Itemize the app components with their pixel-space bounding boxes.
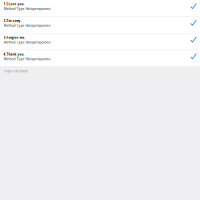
staticText: 2.I'm sorry.	[3, 19, 21, 23]
staticText: Method Type Holopempororio	[3, 23, 50, 27]
button[interactable]: 2.I'm sorry.	[0, 17, 200, 33]
staticText: 1.I Love you.	[3, 2, 24, 6]
staticText: 4 responses selected.	[4, 69, 29, 73]
staticText: 4.Thank you.	[3, 52, 24, 56]
staticText: Method Type Holopempororio	[3, 7, 50, 11]
staticText: 3.Forgive me.	[3, 36, 25, 39]
button[interactable]: 3.Forgive me.	[0, 33, 200, 50]
button[interactable]: 1.I Love you.	[0, 0, 200, 17]
button[interactable]: 4.Thank you.	[0, 50, 200, 67]
staticText: Method Type Holopempororio	[3, 57, 50, 61]
staticText: Method Type Holopempororio	[3, 40, 50, 44]
